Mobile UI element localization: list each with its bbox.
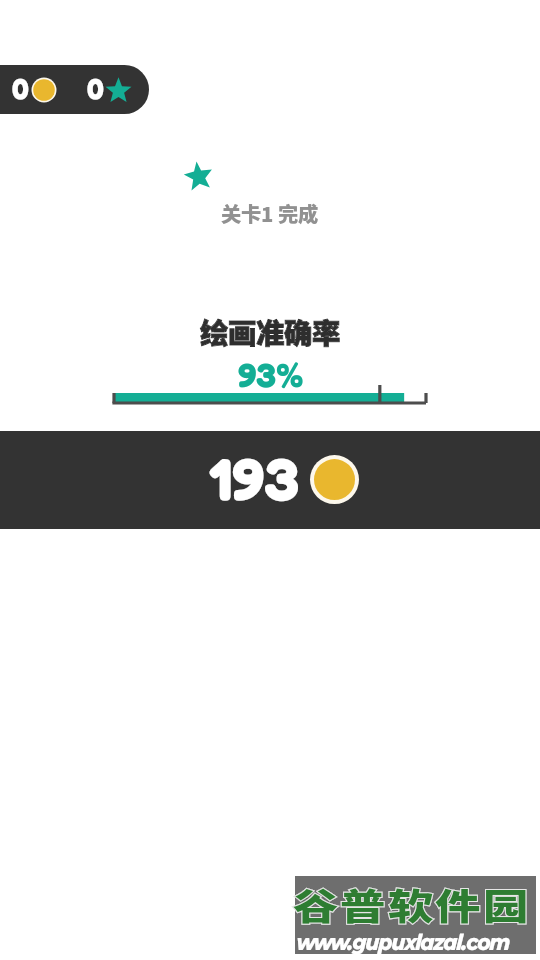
button[interactable]: Coins and stars	[0, 65, 149, 114]
button[interactable]	[0, 431, 540, 529]
